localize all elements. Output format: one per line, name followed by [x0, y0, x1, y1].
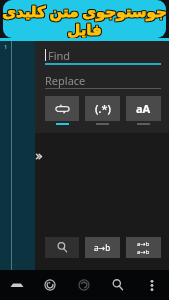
button[interactable]: Wrap around [45, 96, 79, 125]
button[interactable]: More options [135, 270, 169, 300]
staticText: جوستوجوی متن کلیدی فایل [0, 0, 168, 37]
staticText: 1 [4, 43, 8, 51]
staticText: aA [136, 101, 151, 116]
button[interactable]: Undo [33, 270, 67, 300]
staticText: جوستوجوی متن کلیدی فایل [0, 1, 168, 38]
button[interactable]: Find next [45, 237, 79, 258]
staticText: Replace [45, 73, 86, 88]
other: Wrap around [56, 104, 69, 114]
button[interactable]: Hide keyboard [0, 270, 33, 300]
other: Find next [57, 242, 68, 253]
staticText: جوستوجوی متن کلیدی فایل [1, 2, 169, 39]
other: Search [112, 279, 124, 291]
button[interactable]: a→b [126, 237, 161, 258]
button[interactable]: a→b [85, 237, 120, 258]
staticText: (.*) [95, 101, 111, 116]
button[interactable]: Replace [45, 72, 161, 89]
staticText: جوستوجوی متن کلیدی فایل [1, 0, 169, 37]
staticText: جوستوجوی متن کلیدی فایل [0, 1, 169, 38]
staticText: a→b [94, 242, 111, 253]
staticText: a→b [137, 240, 150, 248]
button[interactable]: Redo [67, 270, 101, 300]
button[interactable]: Find [45, 47, 161, 65]
staticText: Find [48, 48, 71, 63]
staticText: جوستوجوی متن کلیدی فایل [0, 0, 169, 37]
button[interactable]: Search [101, 270, 135, 300]
staticText: جوستوجوی متن کلیدی فایل [1, 1, 169, 38]
staticText: جوستوجوی متن کلیدی فایل [0, 2, 168, 39]
button[interactable]: aA [126, 96, 161, 125]
staticText: جوستوجوی متن کلیدی فایل [0, 2, 169, 39]
button[interactable]: (.*) [85, 96, 120, 125]
staticText: a→b [137, 248, 150, 256]
